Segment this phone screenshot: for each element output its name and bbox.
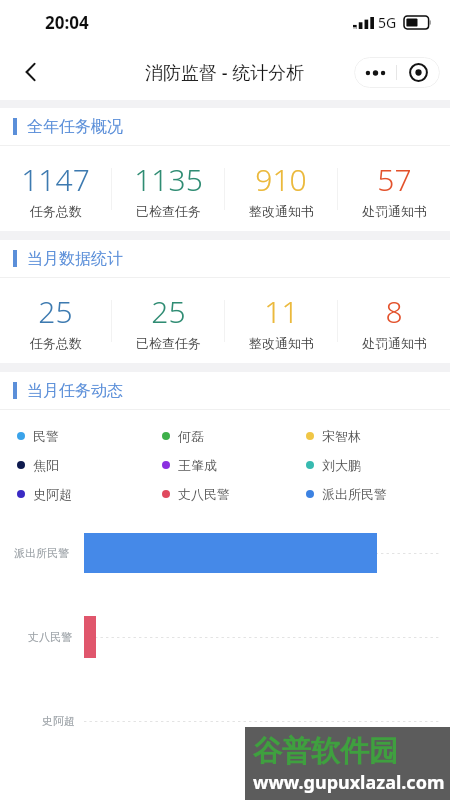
staticText: 已检查任务: [136, 335, 201, 351]
button[interactable]: 刘大鹏: [306, 450, 450, 479]
button[interactable]: 焦阳: [17, 450, 162, 479]
staticText: 丈八民警: [178, 486, 230, 502]
button[interactable]: 11: [225, 278, 337, 363]
button[interactable]: 1147: [0, 146, 111, 231]
staticText: 当月任务动态: [27, 381, 123, 401]
staticText: 派出所民警: [14, 546, 69, 560]
staticText: 全年任务概况: [27, 117, 123, 137]
button[interactable]: 25: [112, 278, 224, 363]
button[interactable]: 1135: [112, 146, 224, 231]
staticText: 8: [385, 291, 403, 332]
staticText: 民警: [33, 428, 59, 444]
staticText: 谷普软件园: [253, 733, 398, 770]
staticText: 丈八民警: [28, 630, 72, 644]
staticText: 刘大鹏: [322, 457, 361, 473]
staticText: 整改通知书: [249, 335, 314, 351]
staticText: 1135: [134, 159, 203, 200]
staticText: 宋智林: [322, 428, 361, 444]
button[interactable]: 史阿超: [17, 479, 162, 508]
button[interactable]: 王肇成: [162, 450, 306, 479]
button[interactable]: 民警: [17, 421, 162, 450]
staticText: 史阿超: [42, 714, 75, 728]
staticText: 25: [38, 291, 73, 332]
staticText: 任务总数: [30, 203, 82, 219]
button[interactable]: 返回: [8, 49, 54, 95]
staticText: 已检查任务: [136, 203, 201, 219]
button[interactable]: 何磊: [162, 421, 306, 450]
button[interactable]: 小程序: [397, 57, 440, 88]
staticText: 910: [255, 159, 307, 200]
staticText: 何磊: [178, 428, 204, 444]
button[interactable]: 更多: [354, 57, 396, 88]
staticText: 任务总数: [30, 335, 82, 351]
staticText: 20:04: [45, 11, 89, 34]
staticText: www.gupuxlazal.com: [253, 770, 445, 795]
staticText: 焦阳: [33, 457, 59, 473]
staticText: 整改通知书: [249, 203, 314, 219]
staticText: 王肇成: [178, 457, 217, 473]
staticText: 25: [151, 291, 186, 332]
staticText: 处罚通知书: [362, 335, 427, 351]
staticText: 史阿超: [33, 486, 72, 502]
button[interactable]: 丈八民警: [162, 479, 306, 508]
staticText: 57: [377, 159, 412, 200]
staticText: 处罚通知书: [362, 203, 427, 219]
button[interactable]: 派出所民警: [306, 479, 450, 508]
staticText: 11: [264, 291, 299, 332]
button[interactable]: 910: [225, 146, 337, 231]
button[interactable]: 25: [0, 278, 111, 363]
button[interactable]: 8: [338, 278, 450, 363]
staticText: 当月数据统计: [27, 249, 123, 269]
button[interactable]: 宋智林: [306, 421, 450, 450]
staticText: 1147: [21, 159, 90, 200]
staticText: 派出所民警: [322, 486, 387, 502]
staticText: 消防监督 - 统计分析: [145, 60, 305, 85]
button[interactable]: 57: [338, 146, 450, 231]
staticText: 5G: [378, 13, 397, 32]
